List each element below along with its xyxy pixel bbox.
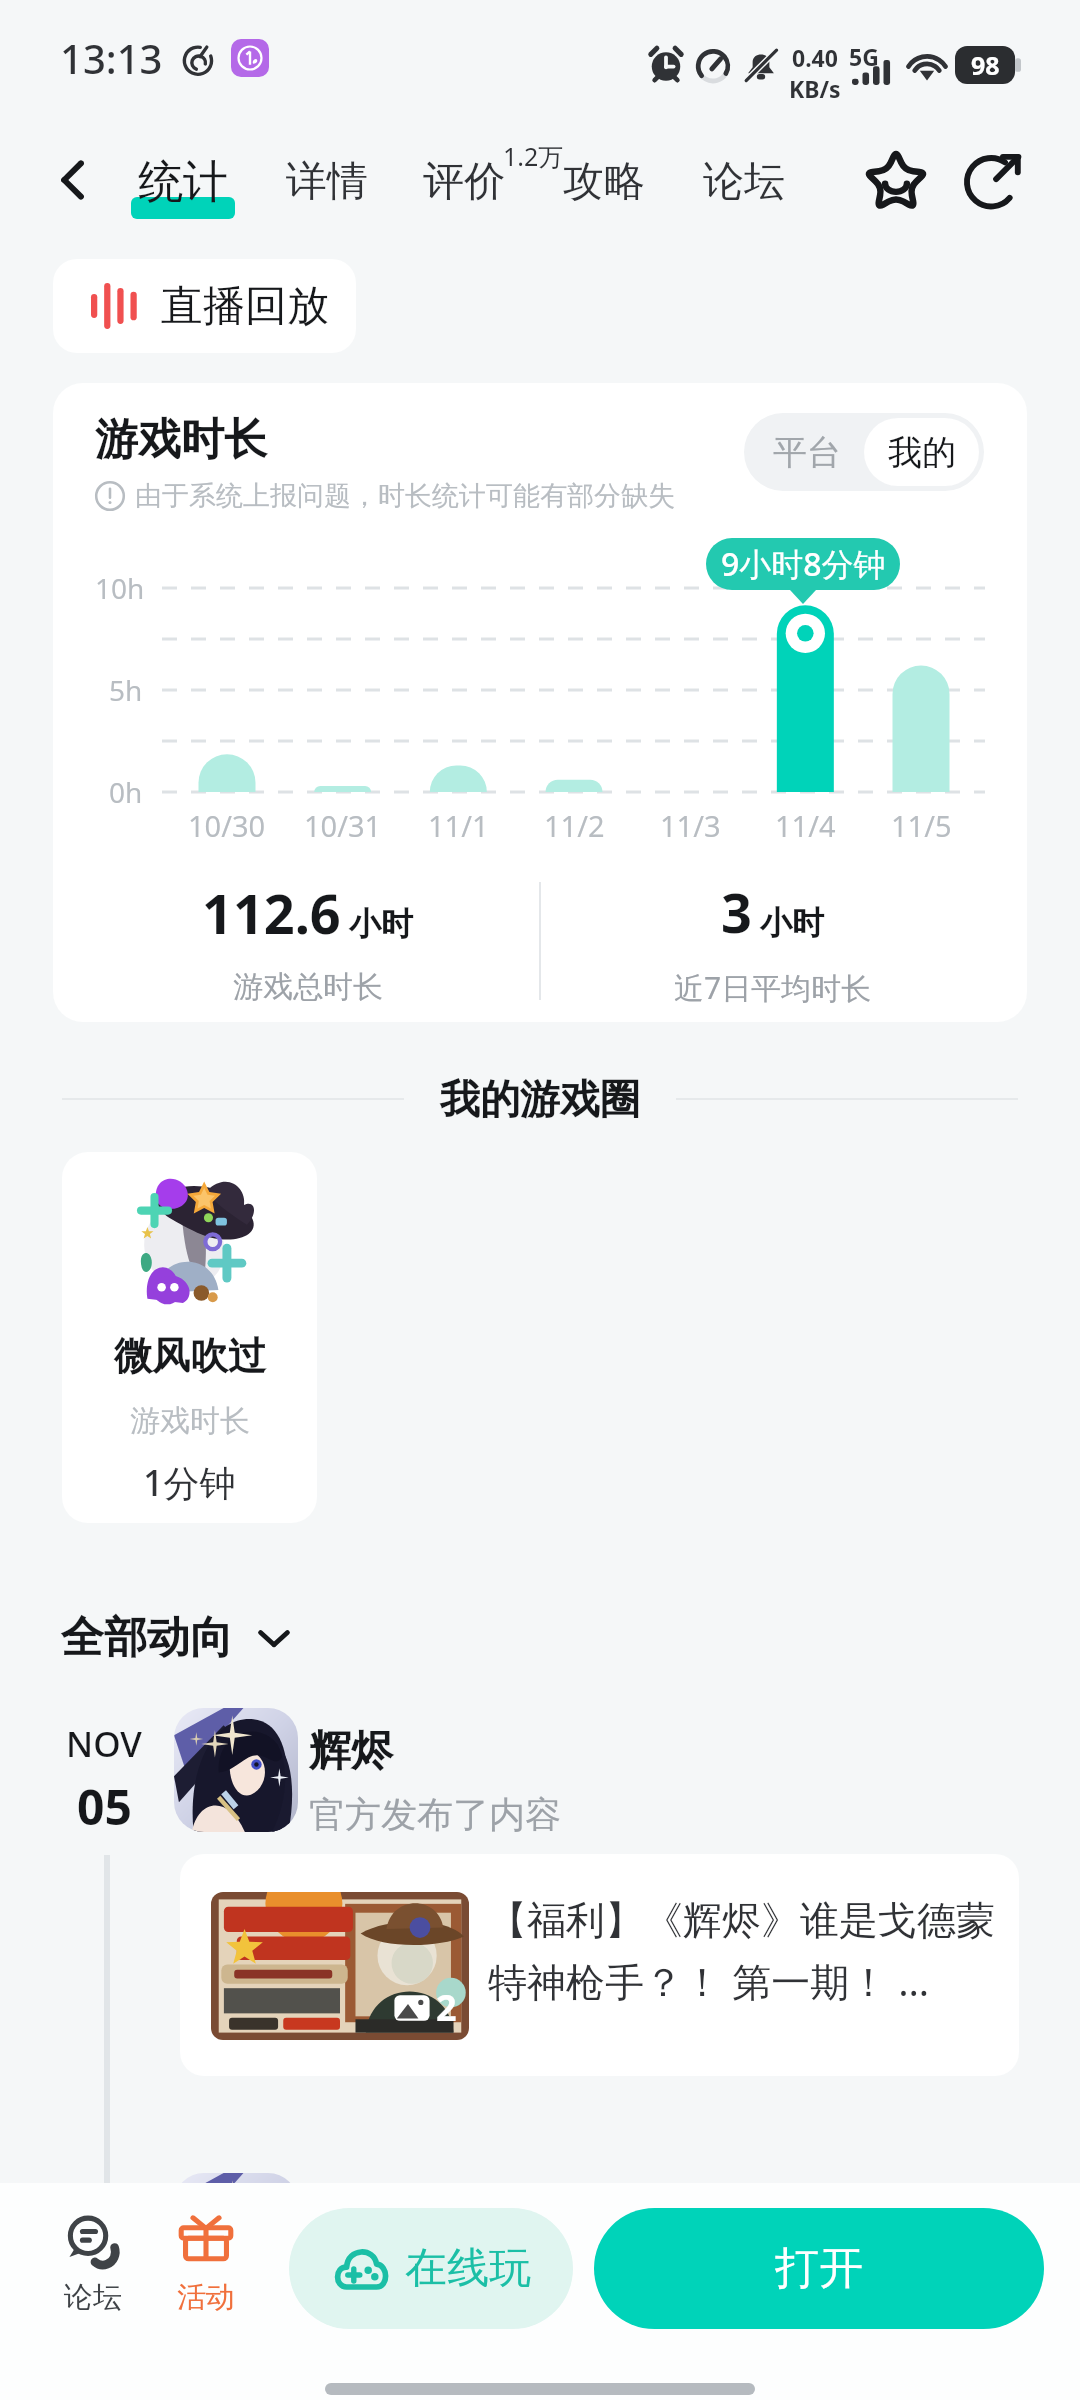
staticText: 05 <box>77 1774 132 1839</box>
staticText: 10/31 <box>304 806 382 845</box>
staticText: 在线玩 <box>405 2242 531 2295</box>
staticText: 评价 <box>423 156 505 208</box>
button[interactable]: Favorite <box>853 138 939 224</box>
staticText: 2 <box>436 1983 457 2032</box>
staticText: 1.2万 <box>503 139 564 173</box>
staticText: 3 <box>721 875 752 949</box>
staticText: 论坛 <box>703 156 785 208</box>
staticText: 9小时8分钟 <box>721 542 886 586</box>
staticText: 5h <box>109 671 143 709</box>
staticText: 打开 <box>775 2241 863 2296</box>
staticText: 5G <box>849 41 879 72</box>
staticText: 10/30 <box>188 806 266 845</box>
button[interactable]: Share <box>950 138 1036 224</box>
staticText: 11/3 <box>660 806 721 845</box>
staticText: NOV <box>66 1720 142 1768</box>
staticText: 我的游戏圈 <box>440 1074 640 1124</box>
staticText: 游戏总时长 <box>233 968 383 1006</box>
button[interactable]: 详情 <box>286 139 368 225</box>
staticText: 0.40 <box>792 42 838 73</box>
staticText: 小时 <box>760 903 824 943</box>
button[interactable]: 论坛 <box>40 2211 146 2316</box>
button[interactable]: 全部动向 <box>61 1611 295 1665</box>
staticText: 1分钟 <box>143 1458 236 1507</box>
staticText: 11/1 <box>428 806 489 845</box>
staticText: 游戏时长 <box>130 1402 250 1440</box>
staticText: 直播回放 <box>161 280 329 333</box>
staticText: 论坛 <box>64 2279 122 2316</box>
button[interactable]: 平台 <box>749 418 864 486</box>
button[interactable]: 直播回放 <box>53 259 356 353</box>
button[interactable]: 微风吹过 <box>62 1152 317 1523</box>
staticText: KB/s <box>789 73 841 104</box>
staticText: 游戏时长 <box>95 413 267 467</box>
button[interactable]: 论坛 <box>703 139 785 225</box>
button[interactable]: 2 <box>180 1854 1019 2076</box>
button[interactable]: 在线玩 <box>289 2208 573 2329</box>
staticText: 平台 <box>773 431 841 474</box>
button[interactable]: 活动 <box>153 2211 259 2316</box>
staticText: 11/5 <box>891 806 952 845</box>
staticText: 112.6 <box>202 876 341 950</box>
staticText: 统计 <box>138 154 228 211</box>
staticText: 近7日平均时长 <box>674 967 872 1008</box>
staticText: 我的 <box>888 431 956 474</box>
button[interactable]: 打开 <box>594 2208 1044 2329</box>
staticText: 详情 <box>286 156 368 208</box>
button[interactable]: Back <box>40 147 106 213</box>
staticText: 辉烬 <box>309 1725 393 1778</box>
button[interactable]: 我的 <box>864 418 979 486</box>
staticText: 小时 <box>349 904 413 944</box>
staticText: 全部动向 <box>61 1611 233 1665</box>
staticText: 官方发布了内容 <box>309 1792 561 1837</box>
button[interactable]: 攻略 <box>563 139 645 225</box>
staticText: 98 <box>971 48 1000 82</box>
button[interactable]: 统计 <box>131 139 235 225</box>
staticText: 活动 <box>177 2279 235 2316</box>
staticText: 0h <box>109 773 143 811</box>
staticText: 11/2 <box>544 806 605 845</box>
staticText: 13:13 <box>60 31 163 85</box>
staticText: 攻略 <box>563 156 645 208</box>
staticText: 10h <box>95 569 145 607</box>
button[interactable]: 评价 <box>423 139 505 225</box>
staticText: 由于系统上报问题，时长统计可能有部分缺失 <box>135 479 675 513</box>
staticText: 【福利】《辉烬》谁是戈德蒙特神枪手？！ 第一期！ … <box>488 1896 998 2008</box>
staticText: 微风吹过 <box>114 1332 266 1380</box>
staticText: 11/4 <box>775 806 836 845</box>
